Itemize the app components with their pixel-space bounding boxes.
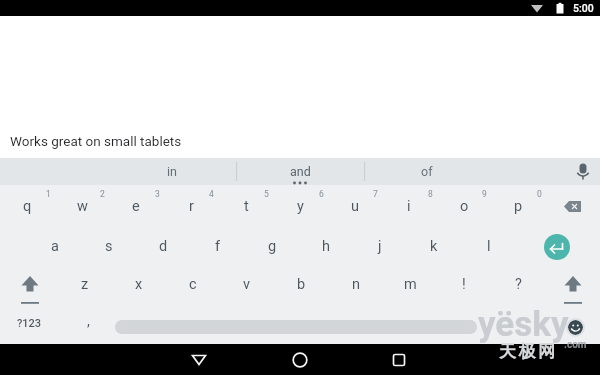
button[interactable] <box>270 344 330 375</box>
button[interactable]: x <box>112 264 166 304</box>
staticText: p <box>514 198 523 215</box>
staticText: l <box>487 238 491 255</box>
button[interactable]: s <box>82 226 136 266</box>
staticText: , <box>87 313 90 330</box>
staticText: 5 <box>264 189 269 199</box>
button[interactable]: i <box>382 186 436 226</box>
button[interactable] <box>546 265 600 305</box>
staticText: 3 <box>155 189 160 199</box>
button[interactable]: q <box>0 186 54 226</box>
staticText: k <box>430 238 438 255</box>
button[interactable]: ?123 <box>2 303 56 343</box>
button[interactable]: c <box>166 264 220 304</box>
button[interactable]: r <box>164 186 218 226</box>
staticText: 0 <box>537 189 542 199</box>
staticText: j <box>378 238 382 255</box>
staticText: 5:00 <box>573 2 594 14</box>
staticText: e <box>132 198 140 215</box>
staticText: w <box>77 198 88 215</box>
button[interactable]: b <box>274 264 328 304</box>
staticText: q <box>23 198 32 215</box>
staticText: Works great on small tablets <box>10 133 182 149</box>
staticText: ?123 <box>17 317 42 330</box>
button[interactable]: j <box>353 226 407 266</box>
button[interactable]: ! <box>437 264 491 304</box>
staticText: ! <box>462 276 466 293</box>
staticText: 8 <box>428 189 433 199</box>
button[interactable]: t <box>219 186 273 226</box>
staticText: t <box>244 198 249 215</box>
staticText: i <box>407 198 411 215</box>
staticText: y <box>297 198 304 215</box>
staticText: yësky <box>478 304 569 345</box>
staticText: of <box>421 164 433 179</box>
staticText: b <box>297 276 306 293</box>
button[interactable]: k <box>407 226 461 266</box>
button[interactable]: l <box>462 226 516 266</box>
button[interactable]: d <box>136 226 190 266</box>
button[interactable]: e <box>109 186 163 226</box>
staticText: o <box>460 198 469 215</box>
button[interactable] <box>169 344 229 375</box>
button[interactable]: , <box>68 301 108 341</box>
staticText: 7 <box>373 189 378 199</box>
button[interactable]: and <box>236 158 364 185</box>
button[interactable]: w <box>55 186 109 226</box>
button[interactable]: g <box>245 226 299 266</box>
staticText: 6 <box>319 189 324 199</box>
button[interactable]: in <box>108 158 236 185</box>
button[interactable]: u <box>328 186 382 226</box>
button[interactable] <box>3 265 57 305</box>
staticText: 4 <box>209 189 214 199</box>
button[interactable] <box>369 344 429 375</box>
staticText: u <box>351 198 359 215</box>
staticText: in <box>167 164 177 179</box>
staticText: h <box>322 238 330 255</box>
staticText: ? <box>515 276 522 293</box>
button[interactable] <box>546 186 600 225</box>
staticText: 2 <box>100 189 105 199</box>
staticText: f <box>215 238 221 255</box>
button[interactable]: h <box>299 226 353 266</box>
button[interactable]: p <box>491 186 545 226</box>
staticText: 天极网 <box>499 341 558 361</box>
button[interactable]: n <box>329 264 383 304</box>
button[interactable]: ? <box>491 264 545 304</box>
staticText: g <box>268 238 277 255</box>
button[interactable]: f <box>191 226 245 266</box>
staticText: 1 <box>46 189 51 199</box>
staticText: 9 <box>482 189 487 199</box>
staticText: z <box>81 276 89 293</box>
button[interactable]: . <box>490 301 530 341</box>
staticText: c <box>189 276 197 293</box>
staticText: n <box>352 276 361 293</box>
staticText: .com <box>564 339 587 351</box>
button[interactable]: a <box>28 226 82 266</box>
staticText: and <box>290 164 311 179</box>
staticText: x <box>135 276 143 293</box>
staticText: v <box>243 276 251 293</box>
button[interactable]: z <box>58 264 112 304</box>
button[interactable]: v <box>220 264 274 304</box>
staticText: d <box>159 238 168 255</box>
button[interactable]: of <box>364 158 490 185</box>
button[interactable]: y <box>273 186 327 226</box>
staticText: m <box>404 276 417 293</box>
button[interactable]: m <box>383 264 437 304</box>
staticText: a <box>51 238 59 255</box>
staticText: r <box>189 198 194 215</box>
staticText: . <box>508 313 512 330</box>
button[interactable] <box>537 227 577 267</box>
button[interactable]: o <box>437 186 491 226</box>
staticText: s <box>105 238 113 255</box>
